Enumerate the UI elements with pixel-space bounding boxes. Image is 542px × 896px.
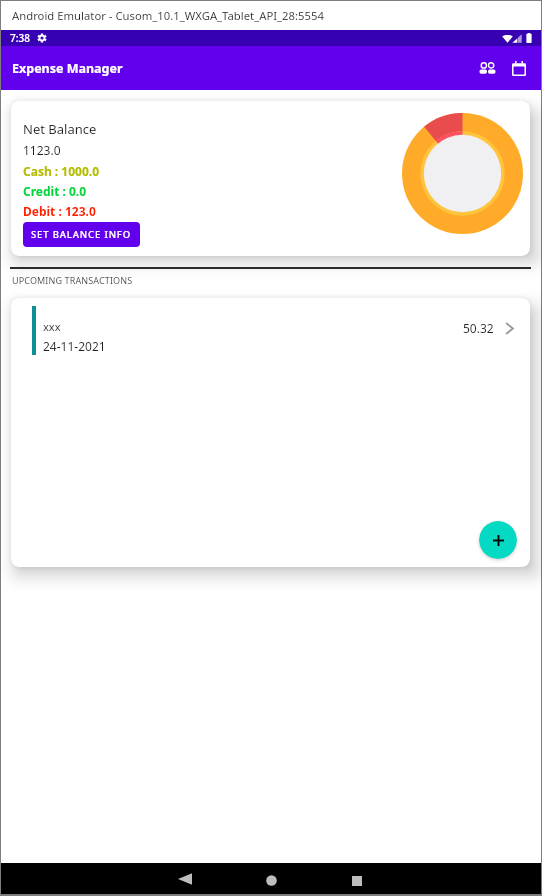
staticText: Android Emulator - Cusom_10.1_WXGA_Table… <box>12 8 324 23</box>
staticText: SET BALANCE INFO <box>31 228 132 241</box>
staticText: xxx <box>43 319 61 334</box>
button[interactable]: xxx <box>11 298 530 358</box>
button[interactable]: Calendar <box>502 51 536 85</box>
staticText: Expense Manager <box>12 60 123 77</box>
staticText: 24-11-2021 <box>43 338 106 354</box>
button[interactable]: Back <box>163 863 207 894</box>
button[interactable]: Group members <box>467 51 501 85</box>
staticText: 7:38 <box>10 31 30 45</box>
button[interactable]: Home <box>249 863 293 894</box>
staticText: Debit : 123.0 <box>23 203 96 219</box>
staticText: Cash : 1000.0 <box>23 163 100 179</box>
button[interactable]: Recents <box>335 863 379 894</box>
staticText: 50.32 <box>463 320 494 336</box>
staticText: Net Balance <box>23 120 97 138</box>
staticText: UPCOMING TRANSACTIONS <box>12 274 133 286</box>
button[interactable]: Add transaction <box>479 521 517 559</box>
staticText: 1123.0 <box>23 142 61 158</box>
button[interactable]: SET BALANCE INFO <box>23 222 140 247</box>
staticText: Credit : 0.0 <box>23 183 87 199</box>
